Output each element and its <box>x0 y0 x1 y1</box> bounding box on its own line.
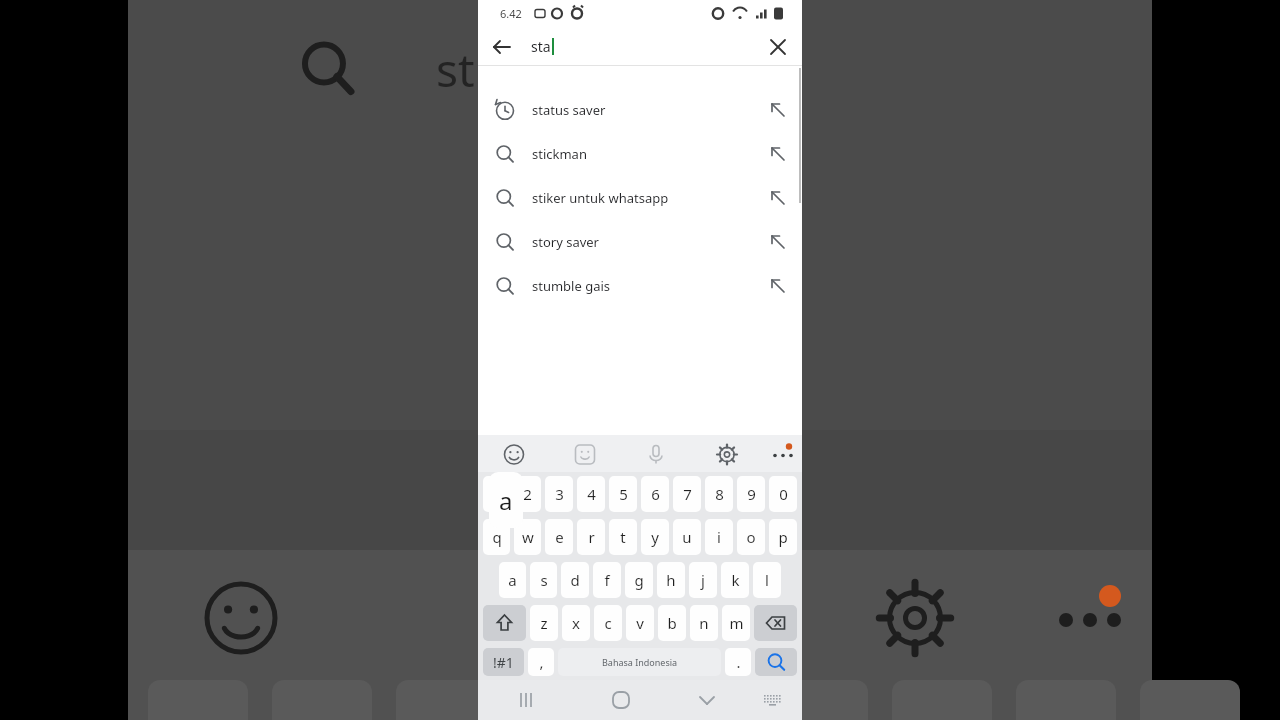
staticText: p <box>778 527 788 547</box>
button[interactable]: 9 <box>737 476 765 512</box>
button[interactable]: h <box>657 562 685 598</box>
button[interactable]: Home <box>573 680 669 720</box>
staticText: j <box>701 570 705 590</box>
button[interactable]: stiker untuk whatsapp <box>478 176 802 220</box>
staticText: l <box>765 570 769 590</box>
staticText: a <box>499 484 513 517</box>
button[interactable]: z <box>530 605 558 641</box>
button[interactable]: q <box>483 519 510 555</box>
button[interactable]: y <box>641 519 669 555</box>
button[interactable]: u <box>673 519 701 555</box>
button[interactable]: k <box>721 562 749 598</box>
staticText: h <box>666 570 676 590</box>
button[interactable]: x <box>562 605 590 641</box>
staticText: x <box>572 613 580 633</box>
button[interactable]: Stickers <box>542 435 607 472</box>
button[interactable]: e <box>545 519 573 555</box>
button[interactable]: Hide keyboard <box>669 680 745 720</box>
button[interactable]: Back <box>486 31 518 63</box>
button[interactable]: stickman <box>478 132 802 176</box>
button[interactable]: r <box>577 519 605 555</box>
staticText: !#1 <box>493 653 514 672</box>
button[interactable]: Insert story saver <box>754 220 802 264</box>
staticText: 7 <box>683 484 692 504</box>
button[interactable]: Emoji <box>478 435 542 472</box>
staticText: a <box>508 570 517 590</box>
staticText: i <box>717 527 721 547</box>
button[interactable]: Insert stumble gais <box>754 264 802 308</box>
button[interactable]: Bahasa Indonesia <box>558 648 721 676</box>
button[interactable]: o <box>737 519 765 555</box>
staticText: 8 <box>715 484 724 504</box>
button[interactable]: n <box>690 605 718 641</box>
staticText: Bahasa Indonesia <box>602 656 678 668</box>
staticText: y <box>651 527 659 547</box>
staticText: v <box>636 613 644 633</box>
button[interactable]: 3 <box>545 476 573 512</box>
staticText: 0 <box>779 484 788 504</box>
staticText: n <box>699 613 709 633</box>
button[interactable]: m <box>722 605 750 641</box>
staticText: u <box>682 527 692 547</box>
button[interactable]: story saver <box>478 220 802 264</box>
staticText: t <box>620 527 626 547</box>
staticText: w <box>522 527 534 547</box>
button[interactable]: w <box>514 519 541 555</box>
staticText: k <box>731 570 740 590</box>
staticText: . <box>736 652 741 672</box>
button[interactable]: Insert stickman <box>754 132 802 176</box>
staticText: 4 <box>587 484 596 504</box>
button[interactable]: 0 <box>769 476 797 512</box>
staticText: q <box>492 527 502 547</box>
button[interactable]: , <box>528 648 554 676</box>
staticText: story saver <box>532 233 754 251</box>
button[interactable]: Shift <box>483 605 526 641</box>
button[interactable]: 1 <box>483 476 510 512</box>
button[interactable]: s <box>530 562 557 598</box>
staticText: stumble gais <box>532 277 754 295</box>
button[interactable]: d <box>561 562 589 598</box>
button[interactable]: . <box>725 648 751 676</box>
button[interactable]: 4 <box>577 476 605 512</box>
staticText: g <box>634 570 644 590</box>
button[interactable]: a <box>499 562 526 598</box>
button[interactable]: f <box>593 562 621 598</box>
staticText: 2 <box>523 484 532 504</box>
button[interactable]: v <box>626 605 654 641</box>
button[interactable]: More options <box>737 435 802 472</box>
button[interactable]: Switch keyboard <box>745 680 798 720</box>
button[interactable]: Recents <box>478 680 573 720</box>
staticText: f <box>604 570 610 590</box>
button[interactable]: Clear search <box>762 31 794 63</box>
button[interactable]: 8 <box>705 476 733 512</box>
staticText: d <box>570 570 580 590</box>
button[interactable]: i <box>705 519 733 555</box>
button[interactable]: 7 <box>673 476 701 512</box>
button[interactable]: g <box>625 562 653 598</box>
button[interactable]: b <box>658 605 686 641</box>
button[interactable]: p <box>769 519 797 555</box>
staticText: b <box>667 613 677 633</box>
staticText: stickman <box>532 145 754 163</box>
button[interactable]: !#1 <box>483 648 524 676</box>
button[interactable]: Backspace <box>754 605 797 641</box>
button[interactable]: 5 <box>609 476 637 512</box>
button[interactable]: Keyboard settings <box>672 435 737 472</box>
staticText: m <box>729 613 744 633</box>
staticText: 3 <box>555 484 564 504</box>
staticText: stumble <box>436 38 613 101</box>
button[interactable]: Voice input <box>607 435 672 472</box>
button[interactable]: t <box>609 519 637 555</box>
button[interactable]: Insert stiker untuk whatsapp <box>754 176 802 220</box>
staticText: 6 <box>651 484 660 504</box>
button[interactable]: j <box>689 562 717 598</box>
button[interactable]: 6 <box>641 476 669 512</box>
button[interactable]: Insert status saver <box>754 88 802 132</box>
button[interactable]: status saver <box>478 88 802 132</box>
button[interactable]: Search <box>755 648 797 676</box>
staticText: r <box>588 527 595 547</box>
button[interactable]: l <box>753 562 781 598</box>
button[interactable]: c <box>594 605 622 641</box>
button[interactable]: 2 <box>514 476 541 512</box>
button[interactable]: stumble gais <box>478 264 802 308</box>
